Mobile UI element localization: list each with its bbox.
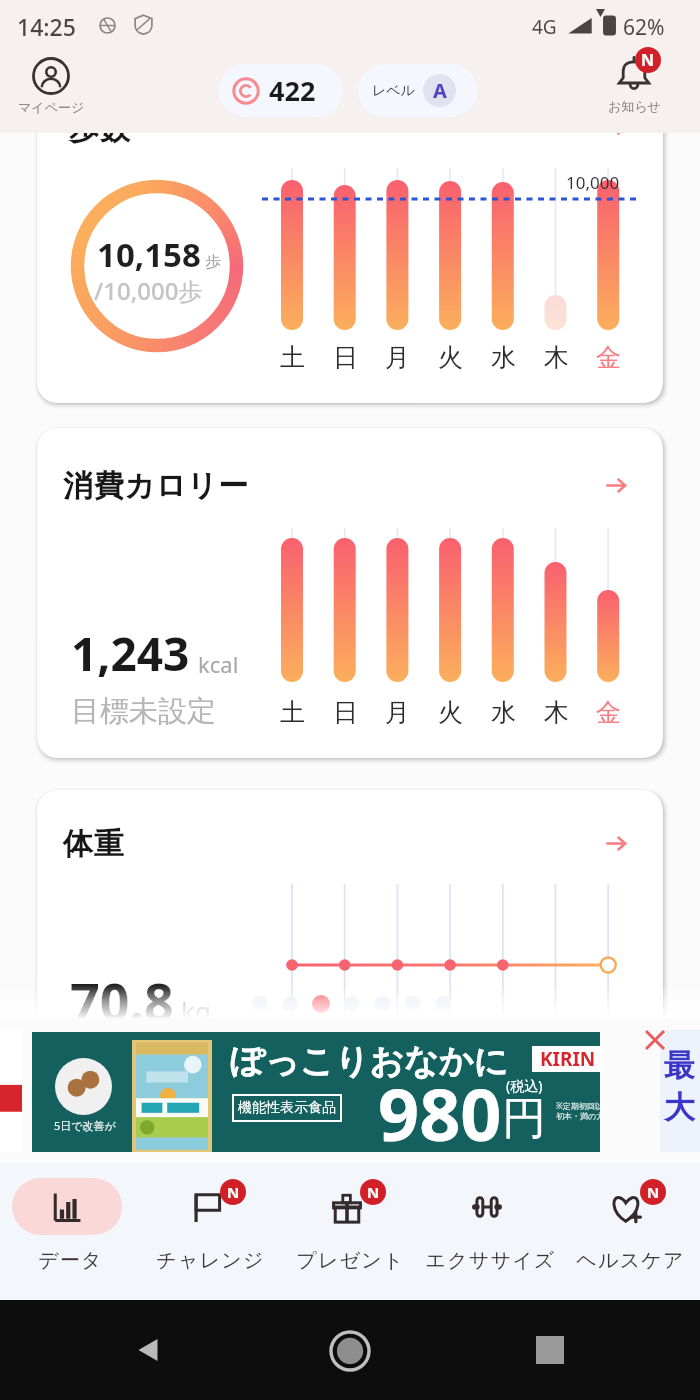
button[interactable]: データ: [0, 1163, 140, 1300]
staticText: レベル: [372, 82, 415, 100]
staticText: N: [647, 1182, 660, 1202]
staticText: /10,000歩: [94, 274, 203, 307]
staticText: 日: [333, 342, 358, 373]
button[interactable]: 広告を閉じる: [643, 1028, 667, 1052]
button[interactable]: お知らせ: [592, 55, 676, 114]
staticText: kg: [181, 993, 211, 1018]
staticText: 円: [502, 1091, 546, 1146]
button[interactable]: 歩数: [37, 133, 663, 403]
button[interactable]: 5日で改善が: [32, 1032, 600, 1152]
staticText: 金: [596, 342, 621, 373]
staticText: 4G: [532, 14, 557, 40]
staticText: N: [641, 49, 655, 71]
staticText: 木: [544, 697, 569, 728]
staticText: 1,243: [71, 622, 190, 685]
staticText: N: [367, 1182, 380, 1202]
button[interactable]: 体重: [37, 790, 663, 1018]
staticText: お知らせ: [608, 98, 661, 114]
staticText: KIRIN: [540, 1046, 596, 1072]
button[interactable]: レベル: [358, 64, 477, 117]
staticText: マイページ: [18, 99, 85, 115]
staticText: 火: [438, 697, 463, 728]
staticText: 62%: [623, 13, 665, 42]
staticText: 10,000: [566, 171, 620, 194]
staticText: 大: [664, 1088, 695, 1127]
staticText: N: [227, 1182, 240, 1202]
staticText: 980: [378, 1064, 502, 1162]
staticText: 火: [438, 342, 463, 373]
button[interactable]: Back: [131, 1333, 165, 1367]
staticText: 土: [280, 697, 305, 728]
staticText: 金: [596, 697, 621, 728]
staticText: 歩数: [69, 133, 131, 148]
staticText: ヘルスケア: [576, 1248, 685, 1273]
button[interactable]: N: [140, 1163, 280, 1300]
staticText: (税込): [506, 1076, 543, 1095]
staticText: プレゼント: [296, 1248, 405, 1273]
staticText: 消費カロリー: [63, 467, 249, 505]
staticText: ぽっこりおなかに: [230, 1040, 509, 1083]
staticText: 月: [385, 342, 410, 373]
staticText: 歩: [205, 252, 221, 272]
staticText: 目標未設定: [71, 693, 216, 730]
button[interactable]: マイページ: [10, 56, 92, 115]
staticText: 10,158: [97, 232, 201, 277]
staticText: 422: [269, 72, 316, 109]
staticText: A: [433, 77, 447, 104]
staticText: 体重: [63, 825, 125, 863]
staticText: 月: [385, 697, 410, 728]
staticText: データ: [38, 1248, 103, 1273]
staticText: 日: [333, 697, 358, 728]
button[interactable]: Home: [327, 1328, 373, 1374]
staticText: 5日で改善が: [54, 1118, 116, 1133]
staticText: kcal: [198, 649, 239, 679]
button[interactable]: N: [280, 1163, 420, 1300]
staticText: ※定期初回以上 初本・満の方: [556, 1100, 611, 1121]
staticText: 機能性表示食品: [238, 1099, 336, 1117]
staticText: 木: [544, 342, 569, 373]
button[interactable]: エクササイズ: [420, 1163, 560, 1300]
staticText: 水: [491, 342, 516, 373]
staticText: チャレンジ: [156, 1248, 265, 1273]
staticText: 土: [280, 342, 305, 373]
button[interactable]: N: [560, 1163, 700, 1300]
staticText: 70.8: [70, 965, 174, 1018]
staticText: 水: [491, 697, 516, 728]
staticText: 14:25: [17, 11, 76, 42]
button[interactable]: 422: [219, 64, 343, 117]
button[interactable]: 消費カロリー: [37, 428, 663, 758]
staticText: エクササイズ: [425, 1248, 556, 1273]
staticText: 最: [664, 1046, 695, 1085]
